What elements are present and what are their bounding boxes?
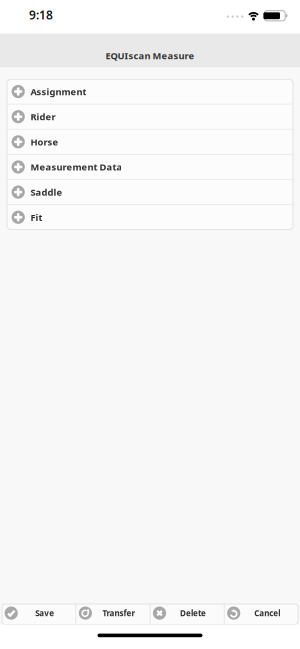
staticText: Save	[35, 608, 54, 618]
button[interactable]: Cancel	[224, 604, 298, 625]
button[interactable]: Assignment	[7, 79, 293, 104]
staticText: EQUIscan Measure	[105, 49, 194, 62]
staticText: Assignment	[30, 85, 86, 98]
button[interactable]: Measurement Data	[7, 155, 293, 179]
button[interactable]: Delete	[150, 604, 224, 625]
staticText: Transfer	[102, 608, 135, 618]
staticText: Cancel	[254, 608, 280, 618]
staticText: Delete	[180, 608, 206, 618]
button[interactable]: Save	[2, 604, 75, 625]
staticText: 9:18	[29, 7, 53, 23]
button[interactable]: Rider	[7, 104, 293, 129]
staticText: Measurement Data	[30, 161, 122, 173]
staticText: Horse	[30, 136, 58, 148]
button[interactable]: Transfer	[76, 604, 150, 625]
staticText: Rider	[30, 110, 55, 123]
button[interactable]: Saddle	[7, 180, 293, 204]
button[interactable]: Horse	[7, 130, 293, 154]
staticText: Saddle	[30, 186, 62, 198]
staticText: Fit	[30, 211, 42, 223]
button[interactable]: Fit	[7, 205, 293, 229]
